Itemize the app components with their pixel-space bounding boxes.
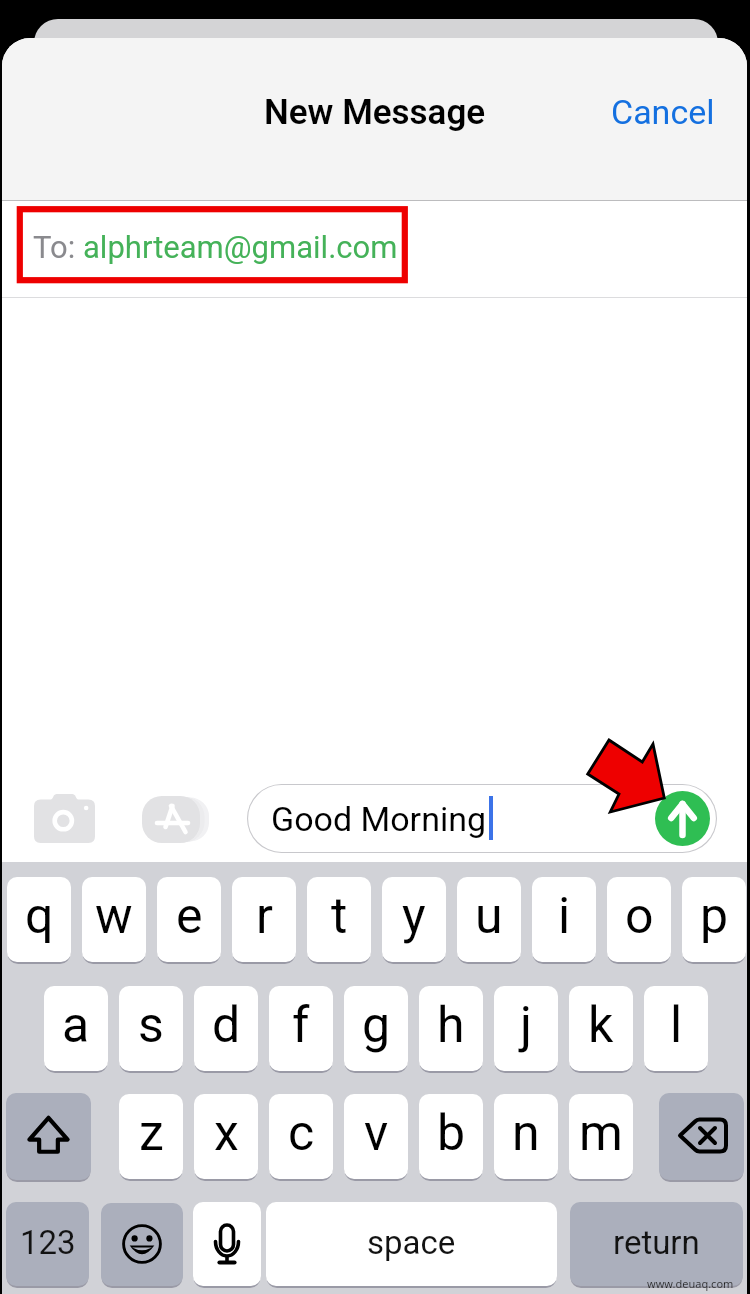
button[interactable]: p <box>682 877 746 962</box>
button[interactable]: g <box>344 986 408 1071</box>
staticText: k <box>588 996 614 1055</box>
staticText: v <box>364 1104 389 1163</box>
staticText: r <box>256 887 273 946</box>
button[interactable]: c <box>269 1094 333 1179</box>
button[interactable]: q <box>7 877 71 962</box>
staticText: g <box>362 996 391 1055</box>
staticText: z <box>139 1104 164 1163</box>
staticText: d <box>212 996 241 1055</box>
staticText: m <box>579 1104 623 1163</box>
staticText: n <box>512 1104 540 1163</box>
button[interactable]: j <box>494 986 558 1071</box>
button[interactable]: v <box>344 1094 408 1179</box>
staticText: h <box>437 996 465 1055</box>
button[interactable]: k <box>569 986 633 1071</box>
staticText: Good Morning <box>271 799 487 839</box>
staticText: a <box>62 996 90 1055</box>
staticText: return <box>613 1223 700 1262</box>
staticText: q <box>25 887 54 946</box>
button[interactable]: Emoji <box>101 1203 183 1286</box>
button[interactable]: To: <box>2 201 747 297</box>
button[interactable]: App Store <box>142 796 209 843</box>
button[interactable]: x <box>194 1094 258 1179</box>
button[interactable]: b <box>419 1094 483 1179</box>
staticText: s <box>138 996 164 1055</box>
staticText: t <box>331 887 348 946</box>
button[interactable]: Shift <box>6 1093 91 1180</box>
staticText: w <box>95 887 133 946</box>
button[interactable]: w <box>82 877 146 962</box>
button[interactable]: return <box>570 1202 743 1286</box>
staticText: j <box>520 996 532 1055</box>
button[interactable]: Camera <box>34 794 95 843</box>
staticText: x <box>214 1104 239 1163</box>
staticText: 123 <box>20 1223 76 1262</box>
button[interactable]: d <box>194 986 258 1071</box>
button[interactable]: o <box>607 877 671 962</box>
staticText: l <box>670 996 683 1055</box>
button[interactable]: space <box>266 1202 557 1286</box>
button[interactable]: y <box>382 877 446 962</box>
button[interactable]: t <box>307 877 371 962</box>
staticText: New Message <box>264 92 486 133</box>
staticText: e <box>176 887 203 946</box>
button[interactable]: 123 <box>6 1202 89 1286</box>
staticText: i <box>558 887 571 946</box>
staticText: o <box>625 887 654 946</box>
staticText: b <box>437 1104 466 1163</box>
button[interactable]: l <box>644 986 708 1071</box>
button[interactable]: Backspace <box>659 1093 744 1180</box>
staticText: space <box>367 1223 456 1262</box>
button[interactable]: s <box>119 986 183 1071</box>
staticText: To: <box>33 229 76 265</box>
button[interactable]: u <box>457 877 521 962</box>
button[interactable]: e <box>157 877 221 962</box>
button[interactable]: a <box>44 986 108 1071</box>
staticText: Cancel <box>611 92 715 132</box>
staticText: www.deuaq.com <box>647 1276 734 1291</box>
staticText: f <box>292 996 310 1055</box>
button[interactable]: i <box>532 877 596 962</box>
button[interactable]: h <box>419 986 483 1071</box>
staticText: c <box>288 1104 315 1163</box>
button[interactable]: Send <box>655 791 710 846</box>
staticText: y <box>402 887 426 946</box>
button[interactable]: r <box>232 877 296 962</box>
button[interactable]: m <box>569 1094 633 1179</box>
button[interactable]: n <box>494 1094 558 1179</box>
button[interactable]: Cancel <box>593 80 747 144</box>
button[interactable]: f <box>269 986 333 1071</box>
button[interactable]: Good Morning <box>247 784 717 853</box>
button[interactable]: Dictate <box>193 1202 261 1286</box>
staticText: alphrteam@gmail.com <box>83 229 398 265</box>
button[interactable]: z <box>119 1094 183 1179</box>
staticText: p <box>700 887 729 946</box>
staticText: u <box>475 887 503 946</box>
